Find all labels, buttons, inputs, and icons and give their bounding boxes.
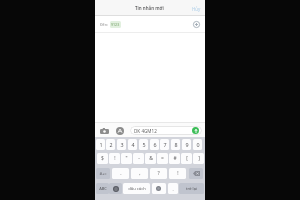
button[interactable]: 0: [193, 139, 202, 150]
button[interactable]: Change keyboard: [109, 183, 122, 194]
staticText: #: [173, 155, 177, 162]
button[interactable]: App Store: [114, 125, 125, 136]
staticText: !: [114, 155, 116, 162]
button[interactable]: !: [109, 153, 120, 164]
button[interactable]: 3: [117, 139, 126, 150]
button[interactable]: DK 4GM12: [130, 126, 202, 135]
staticText: ?: [157, 170, 160, 177]
button[interactable]: -: [133, 153, 144, 164]
button[interactable]: Hủy: [188, 3, 205, 15]
button[interactable]: Add contact: [190, 18, 203, 31]
staticText: trở lại: [186, 186, 197, 191]
button[interactable]: 9: [182, 139, 191, 150]
button[interactable]: [: [181, 153, 192, 164]
staticText: Đến:: [100, 22, 108, 27]
button[interactable]: Backspace: [189, 168, 203, 179]
staticText: !: [177, 170, 179, 177]
button[interactable]: &: [145, 153, 156, 164]
staticText: dấu cách: [128, 186, 146, 192]
staticText: 4: [131, 141, 135, 148]
button[interactable]: #+=: [96, 168, 110, 179]
button[interactable]: ,: [131, 168, 148, 179]
button[interactable]: $: [97, 153, 108, 164]
staticText: ": [125, 155, 128, 162]
button[interactable]: dấu cách: [123, 183, 150, 194]
staticText: [: [186, 155, 188, 162]
staticText: .: [172, 186, 174, 192]
staticText: .: [120, 170, 122, 177]
button[interactable]: 5: [139, 139, 148, 150]
button[interactable]: Emoji: [152, 183, 166, 194]
button[interactable]: .: [112, 168, 129, 179]
button[interactable]: =: [157, 153, 168, 164]
button[interactable]: 9123: [110, 21, 121, 28]
staticText: ,: [139, 170, 141, 177]
button[interactable]: 1: [96, 139, 105, 150]
button[interactable]: trở lại: [179, 183, 204, 194]
button[interactable]: 8: [171, 139, 180, 150]
staticText: Hủy: [192, 6, 201, 12]
staticText: 0: [196, 141, 200, 148]
staticText: #+=: [99, 171, 107, 176]
staticText: &: [149, 155, 153, 162]
button[interactable]: ": [121, 153, 132, 164]
staticText: 6: [153, 141, 157, 148]
staticText: -: [138, 155, 140, 162]
button[interactable]: ?: [150, 168, 167, 179]
button[interactable]: 4: [128, 139, 137, 150]
button[interactable]: ]: [193, 153, 204, 164]
staticText: 8: [174, 141, 178, 148]
staticText: 3: [120, 141, 124, 148]
button[interactable]: .: [168, 183, 178, 194]
staticText: 2: [109, 141, 113, 148]
staticText: 5: [142, 141, 146, 148]
staticText: =: [161, 155, 164, 162]
staticText: ]: [198, 155, 200, 162]
button[interactable]: #: [169, 153, 180, 164]
staticText: 9123: [111, 22, 120, 27]
staticText: Tin nhắn mới: [135, 5, 164, 11]
staticText: 1: [99, 141, 103, 148]
staticText: ABC: [99, 186, 107, 191]
staticText: DK 4GM12: [134, 128, 157, 134]
button[interactable]: 2: [106, 139, 115, 150]
button[interactable]: 6: [150, 139, 159, 150]
button[interactable]: Camera: [99, 125, 110, 136]
staticText: 9: [185, 141, 189, 148]
staticText: $: [101, 155, 104, 162]
button[interactable]: Send: [190, 125, 201, 136]
button[interactable]: ABC: [96, 183, 109, 194]
button[interactable]: 7: [160, 139, 169, 150]
staticText: 7: [163, 141, 167, 148]
button[interactable]: !: [169, 168, 186, 179]
